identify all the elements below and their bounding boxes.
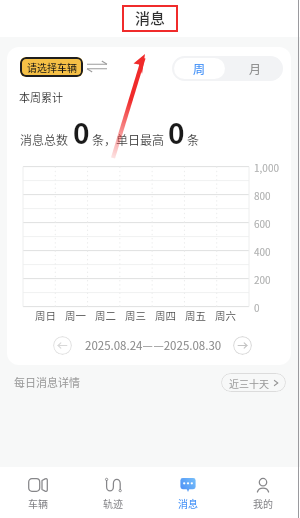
button[interactable]: 下一周 [233, 336, 252, 355]
staticText: 我的 [253, 496, 273, 510]
button[interactable]: 切换车辆 [87, 61, 107, 72]
staticText: 轨迹 [103, 496, 123, 510]
button[interactable]: 近三十天 [221, 373, 286, 392]
staticText: 600 [254, 216, 271, 230]
staticText: 200 [254, 272, 271, 286]
staticText: 周 [193, 60, 206, 77]
staticText: 周五 [185, 308, 206, 323]
button[interactable]: 上一周 [53, 336, 72, 355]
staticText: 条，单日最高 [92, 131, 165, 148]
staticText: 400 [254, 244, 271, 258]
staticText: 2025.08.24— —2025.08.30 [85, 337, 222, 354]
staticText: 消息 [135, 7, 166, 29]
staticText: 近三十天 [229, 376, 269, 390]
staticText: 周日 [35, 308, 56, 323]
staticText: 每日消息详情 [14, 374, 80, 390]
staticText: 消息总数 [20, 131, 69, 148]
button[interactable]: 月 [227, 56, 283, 81]
staticText: 本周累计 [19, 89, 63, 105]
button[interactable]: 轨迹 [75, 478, 150, 518]
staticText: 1,000 [254, 160, 279, 174]
staticText: 周二 [95, 308, 116, 323]
button[interactable]: 周 [174, 58, 225, 79]
staticText: 周三 [125, 308, 146, 323]
staticText: 周四 [155, 308, 176, 323]
button[interactable]: 消息 [135, 7, 166, 29]
staticText: 800 [254, 188, 271, 202]
staticText: 请选择车辆 [27, 60, 77, 74]
button[interactable]: 车辆 [0, 478, 75, 518]
staticText: 条 [187, 131, 200, 148]
staticText: 0 [168, 112, 185, 153]
staticText: 0 [73, 112, 90, 153]
button[interactable]: 消息 [150, 478, 225, 518]
button[interactable]: 我的 [225, 478, 300, 518]
button[interactable]: 请选择车辆 [20, 57, 83, 77]
staticText: 月 [249, 60, 262, 77]
staticText: 车辆 [28, 496, 48, 510]
staticText: 周一 [65, 308, 86, 323]
staticText: 消息 [178, 496, 198, 510]
staticText: 0 [254, 300, 260, 314]
staticText: 周六 [215, 308, 236, 323]
